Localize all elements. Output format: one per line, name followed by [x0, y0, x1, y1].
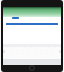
button[interactable] — [6, 23, 58, 25]
button[interactable]: Home — [29, 65, 35, 71]
button[interactable] — [12, 17, 19, 19]
